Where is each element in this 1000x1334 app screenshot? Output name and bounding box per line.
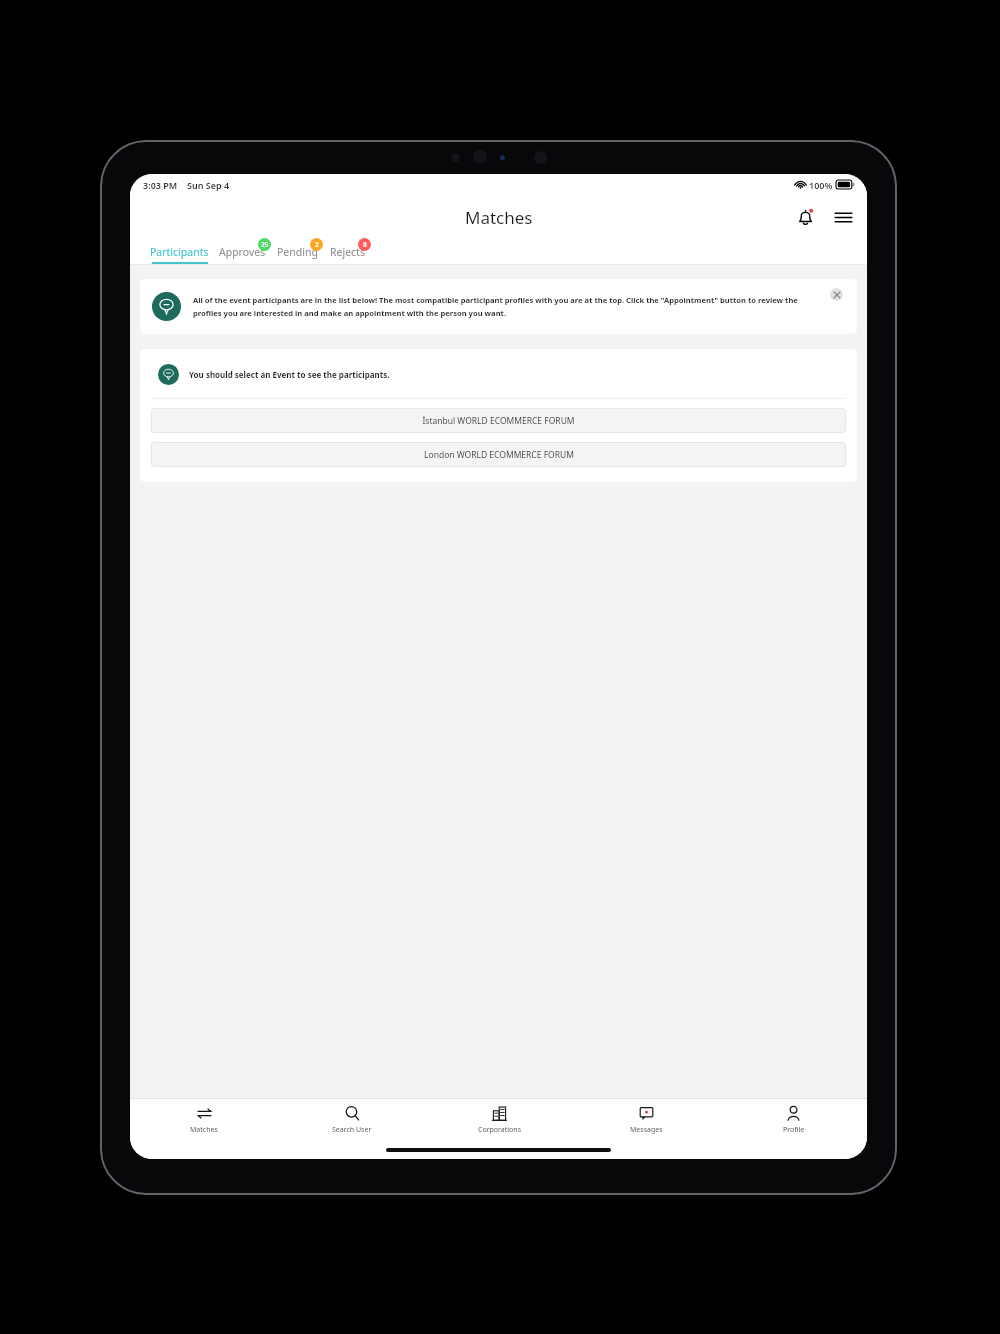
staticText: Corporations — [478, 1125, 522, 1135]
staticText: London WORLD ECOMMERCE FORUM — [424, 449, 574, 461]
staticText: Pending — [277, 245, 318, 259]
button[interactable]: Rejects — [323, 239, 371, 264]
button[interactable]: İstanbul WORLD ECOMMERCE FORUM — [151, 408, 846, 433]
staticText: 100% — [809, 179, 833, 191]
button[interactable]: Messages — [573, 1099, 720, 1140]
staticText: Rejects — [330, 245, 365, 259]
staticText: All of the event participants are in the… — [193, 295, 823, 318]
button[interactable]: Matches — [130, 1099, 278, 1140]
staticText: Matches — [190, 1125, 218, 1135]
staticText: 25 — [261, 240, 269, 249]
button[interactable]: Profile — [720, 1099, 867, 1140]
staticText: Messages — [630, 1125, 663, 1135]
staticText: Sun Sep 4 — [187, 179, 230, 191]
staticText: Profile — [783, 1125, 805, 1135]
staticText: İstanbul WORLD ECOMMERCE FORUM — [422, 415, 575, 427]
staticText: You should select an Event to see the pa… — [189, 369, 390, 380]
button[interactable]: Close — [830, 288, 843, 301]
button[interactable]: Menu — [830, 204, 856, 230]
staticText: 2 — [315, 240, 319, 249]
staticText: 8 — [363, 240, 367, 249]
button[interactable]: Search User — [278, 1099, 426, 1140]
staticText: Matches — [465, 206, 533, 229]
button[interactable]: Notifications — [792, 204, 818, 230]
button[interactable]: Corporations — [426, 1099, 573, 1140]
button[interactable]: London WORLD ECOMMERCE FORUM — [151, 442, 846, 467]
button[interactable]: Pending — [271, 239, 323, 264]
button[interactable]: Participants — [145, 239, 214, 264]
staticText: Participants — [150, 245, 209, 259]
staticText: Approves — [219, 245, 266, 259]
button[interactable]: Approves — [214, 239, 271, 264]
staticText: 3:03 PM — [143, 179, 178, 191]
staticText: Search User — [332, 1125, 372, 1135]
